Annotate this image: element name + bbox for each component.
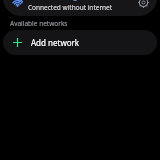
button[interactable]: Add network [3, 30, 157, 55]
staticText: wifi_internet_gn_abcd [28, 0, 101, 2]
staticText: Add network [31, 37, 80, 48]
staticText: Connected without internet [28, 3, 113, 12]
button[interactable]: Network settings [135, 0, 151, 10]
staticText: Available networks [10, 19, 68, 28]
button[interactable]: wifi_internet_gn_abcd [3, 0, 157, 16]
